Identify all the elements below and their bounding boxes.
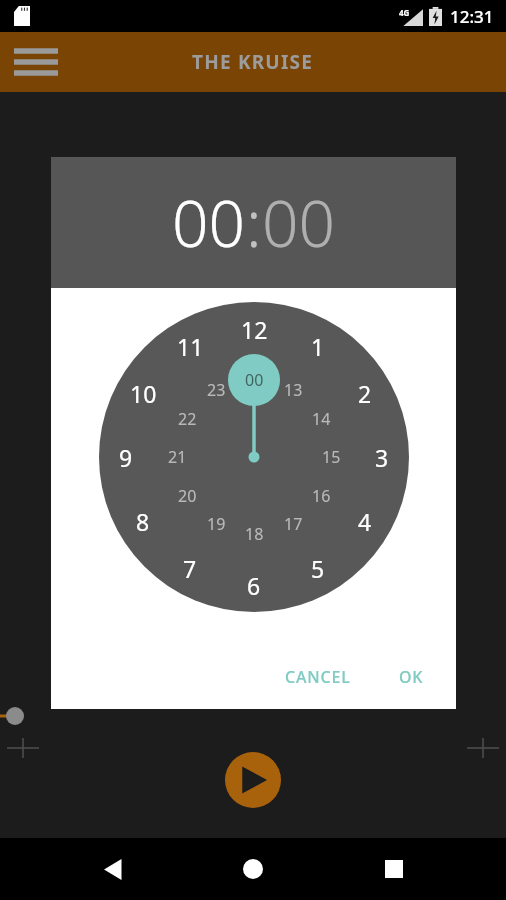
staticText: OK — [399, 666, 424, 688]
button[interactable]: 00 — [172, 179, 246, 266]
staticText: 20 — [178, 485, 197, 507]
staticText: 18 — [245, 523, 264, 545]
staticText: 16 — [312, 485, 331, 507]
button[interactable]: Back — [85, 841, 141, 897]
staticText: 2 — [358, 378, 372, 409]
staticText: 13 — [284, 379, 303, 401]
staticText: 21 — [168, 446, 187, 468]
staticText: 1 — [311, 331, 325, 362]
staticText: 17 — [284, 513, 303, 535]
staticText: 5 — [311, 553, 325, 584]
staticText: : — [246, 179, 262, 266]
button[interactable]: Play — [225, 752, 281, 808]
staticText: 8 — [136, 506, 150, 537]
staticText: 12:31 — [450, 5, 494, 28]
staticText: THE KRUISE — [192, 49, 314, 75]
staticText: 11 — [177, 331, 204, 362]
staticText: 7 — [183, 553, 197, 584]
staticText: 19 — [207, 513, 226, 535]
staticText: 12 — [241, 314, 268, 345]
staticText: 10 — [130, 378, 157, 409]
staticText: 23 — [207, 379, 226, 401]
button[interactable]: Menu — [8, 34, 64, 90]
button[interactable]: CANCEL — [273, 658, 363, 696]
staticText: 22 — [178, 408, 197, 430]
staticText: 4 — [358, 506, 372, 537]
staticText: 3 — [375, 442, 389, 473]
staticText: 9 — [119, 442, 133, 473]
button[interactable]: Home — [225, 841, 281, 897]
staticText: 4G — [399, 7, 410, 18]
staticText: 14 — [312, 408, 331, 430]
other: Seek handle — [0, 706, 30, 726]
button[interactable]: OK — [387, 658, 436, 696]
staticText: CANCEL — [285, 666, 351, 688]
button[interactable]: Clock face hour picker — [99, 302, 409, 612]
button[interactable]: Recent apps — [366, 841, 422, 897]
staticText: 15 — [322, 446, 341, 468]
staticText: 00 — [245, 369, 264, 391]
staticText: 6 — [247, 570, 261, 601]
button[interactable]: 00 — [262, 179, 336, 266]
